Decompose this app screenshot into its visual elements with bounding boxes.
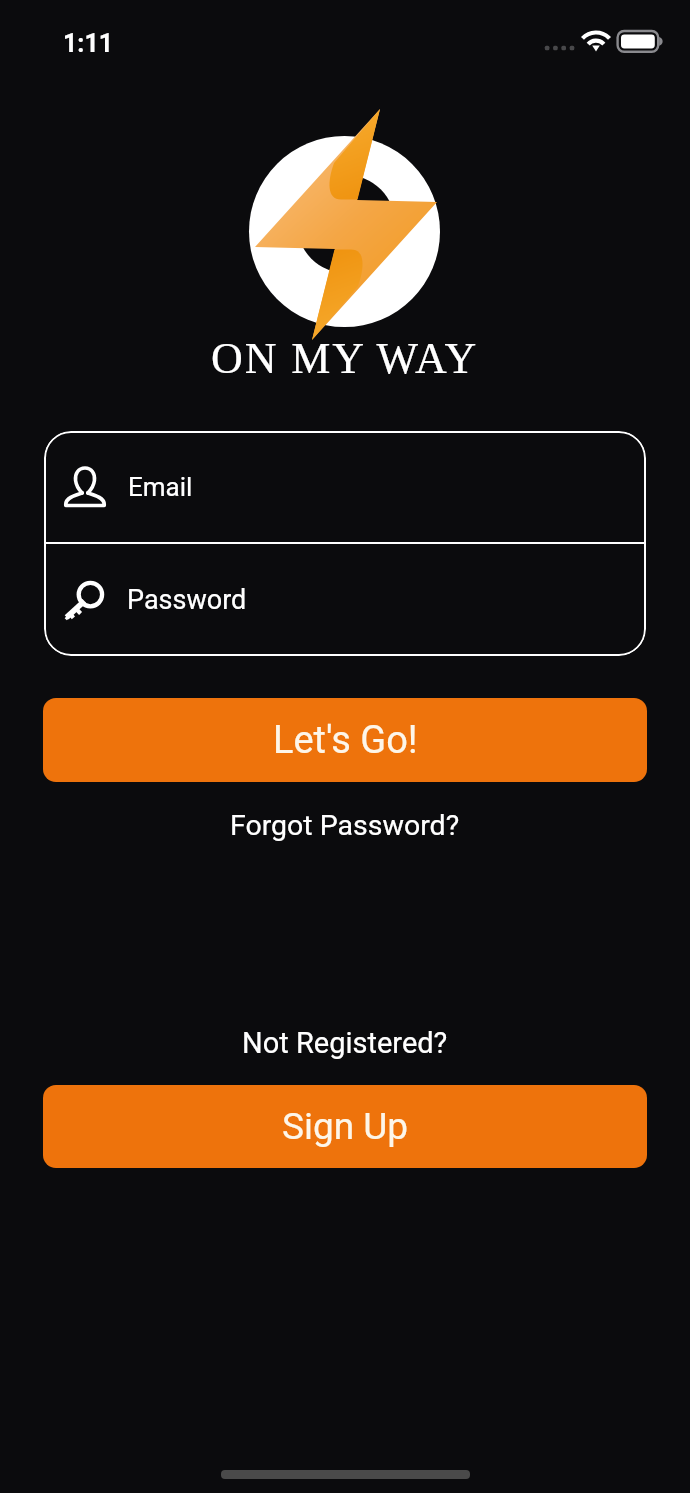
staticText: Forgot Password? (230, 809, 460, 842)
button[interactable]: Forgot Password? (222, 805, 468, 846)
button[interactable]: Email (44, 431, 646, 542)
staticText: Password (127, 584, 247, 616)
staticText: Sign Up (282, 1105, 409, 1148)
staticText: Let's Go! (273, 718, 418, 763)
button[interactable]: Password (44, 544, 646, 655)
staticText: Not Registered? (242, 1026, 448, 1060)
button[interactable]: Sign Up (43, 1085, 647, 1168)
button[interactable]: Let's Go! (43, 698, 647, 782)
staticText: Email (128, 472, 193, 502)
staticText: ON MY WAY (211, 334, 479, 383)
staticText: 1:11 (63, 29, 114, 58)
